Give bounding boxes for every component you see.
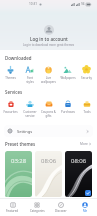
staticText: Purchases xyxy=(61,110,75,114)
staticText: 10:31 xyxy=(29,2,38,6)
button[interactable]: Categories xyxy=(25,199,49,215)
other: Selected theme xyxy=(85,190,91,196)
staticText: Settings xyxy=(17,129,33,134)
staticText: Wallpapers xyxy=(60,76,76,80)
staticText: Services xyxy=(5,89,23,95)
staticText: Log in to account xyxy=(30,36,68,42)
button[interactable]: Favourites xyxy=(1,100,20,114)
button[interactable]: Coupons & gifts xyxy=(39,100,58,118)
staticText: Preset themes xyxy=(5,141,36,147)
button[interactable]: Customer service xyxy=(20,100,39,118)
button[interactable]: 08:06 xyxy=(35,151,62,197)
staticText: Featured xyxy=(6,209,19,213)
button[interactable]: Discover xyxy=(49,199,73,215)
button[interactable]: Live wallpapers xyxy=(39,65,58,84)
staticText: Themes xyxy=(5,76,16,80)
button[interactable]: Wallpapers xyxy=(58,65,77,80)
button[interactable]: Purchases xyxy=(58,100,77,114)
button[interactable]: Me xyxy=(73,199,97,215)
button[interactable]: Font styles xyxy=(20,65,39,84)
button[interactable]: Featured xyxy=(0,199,25,215)
button[interactable]: Security xyxy=(77,65,96,80)
button[interactable]: 03:28 xyxy=(5,151,32,197)
staticText: 08:06 xyxy=(71,157,87,165)
staticText: More xyxy=(80,142,88,146)
staticText: 08:06 xyxy=(41,157,57,165)
staticText: 03:28 xyxy=(11,157,27,165)
button[interactable]: Themes xyxy=(1,65,20,80)
staticText: Categories xyxy=(30,209,45,213)
staticText: Customer service xyxy=(23,110,37,118)
staticText: Log in to download more great themes xyxy=(23,43,75,47)
staticText: Me xyxy=(83,209,88,213)
staticText: Coupons & gifts xyxy=(41,110,56,118)
button[interactable]: Settings xyxy=(4,125,93,137)
staticText: 94 xyxy=(81,2,85,6)
button[interactable]: Tools xyxy=(77,100,96,114)
staticText: Favourites xyxy=(3,110,18,114)
button[interactable]: More xyxy=(79,140,93,148)
staticText: Font styles xyxy=(26,76,34,84)
staticText: Security xyxy=(81,76,92,80)
staticText: Live wallpapers xyxy=(41,76,56,84)
staticText: Tools xyxy=(83,110,91,114)
staticText: Discover xyxy=(55,209,67,213)
staticText: Downloaded xyxy=(5,55,32,61)
button[interactable]: 08:06 xyxy=(65,151,92,197)
